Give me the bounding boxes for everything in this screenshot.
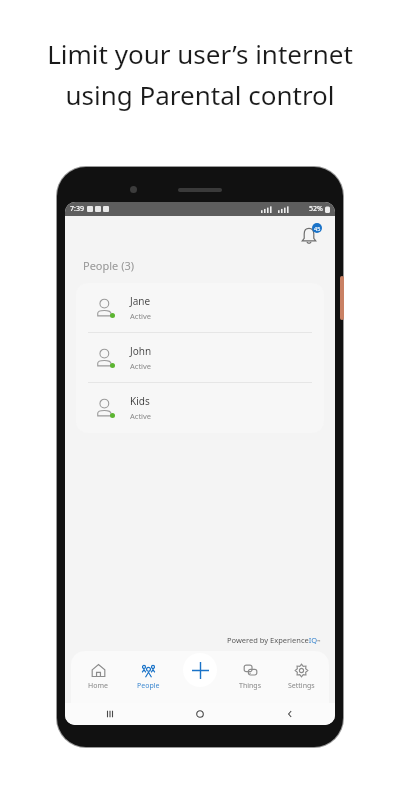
button[interactable]: People xyxy=(123,651,174,703)
button[interactable]: Notifications xyxy=(297,224,321,248)
button[interactable]: Settings xyxy=(276,651,327,703)
staticText: Active xyxy=(130,311,152,321)
button[interactable]: Add xyxy=(183,653,217,687)
button[interactable]: Home xyxy=(73,651,123,703)
staticText: Jane xyxy=(130,294,151,308)
staticText: John xyxy=(130,344,152,358)
staticText: using Parental control xyxy=(65,77,335,112)
staticText: People (3) xyxy=(83,258,135,273)
button[interactable]: Home xyxy=(195,709,205,719)
staticText: 7:39 xyxy=(70,204,84,214)
staticText: People xyxy=(137,681,160,691)
button[interactable]: Jane xyxy=(76,283,324,332)
staticText: Active xyxy=(130,411,152,421)
staticText: Active xyxy=(130,361,152,371)
staticText: Limit your user’s internet xyxy=(47,36,353,71)
button[interactable]: Back xyxy=(285,709,295,719)
staticText: Kids xyxy=(130,394,150,408)
button[interactable]: Things xyxy=(225,651,276,703)
staticText: Powered by ExperienceIQ™ xyxy=(227,635,321,645)
staticText: Settings xyxy=(288,681,315,691)
button[interactable]: Kids xyxy=(76,383,324,432)
staticText: Things xyxy=(239,681,262,691)
staticText: 52% xyxy=(309,204,323,214)
button[interactable]: John xyxy=(76,333,324,382)
staticText: 45 xyxy=(314,225,321,232)
staticText: Home xyxy=(88,681,108,691)
button[interactable]: Recents xyxy=(105,709,115,719)
